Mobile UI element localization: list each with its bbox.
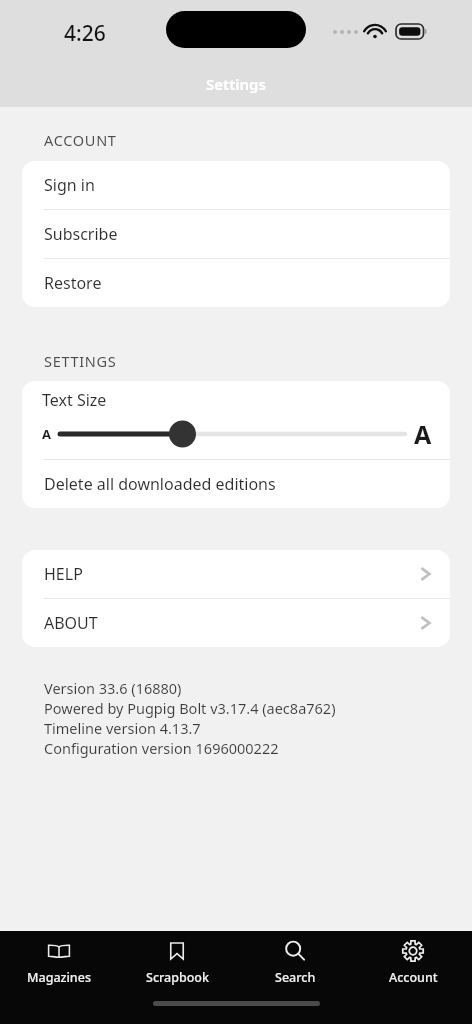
staticText: Magazines <box>27 969 91 986</box>
button[interactable]: Search <box>236 931 354 993</box>
staticText: ACCOUNT <box>44 130 117 150</box>
staticText: Configuration version 1696000222 <box>44 738 279 758</box>
staticText: Timeline version 4.13.7 <box>44 718 201 738</box>
staticText: Account <box>389 969 438 986</box>
staticText: Scrapbook <box>146 969 209 986</box>
staticText: HELP <box>44 563 83 585</box>
staticText: Subscribe <box>44 223 118 245</box>
staticText: ABOUT <box>44 612 98 634</box>
staticText: 4:26 <box>64 19 106 48</box>
staticText: Sign in <box>44 174 95 196</box>
staticText: Search <box>275 969 316 986</box>
button[interactable]: Text size slider <box>51 418 414 450</box>
button[interactable]: HELP <box>22 550 450 598</box>
button[interactable]: Restore <box>22 259 450 307</box>
staticText: Delete all downloaded editions <box>44 473 276 495</box>
staticText: A <box>42 425 51 443</box>
staticText: Text Size <box>42 389 107 411</box>
staticText: Version 33.6 (16880) <box>44 678 182 698</box>
button[interactable]: Magazines <box>0 931 118 993</box>
staticText: Restore <box>44 272 102 294</box>
staticText: SETTINGS <box>44 351 117 371</box>
button[interactable]: Delete all downloaded editions <box>22 460 450 508</box>
button[interactable]: Sign in <box>22 161 450 209</box>
staticText: Settings <box>0 74 472 94</box>
button[interactable]: ABOUT <box>22 599 450 647</box>
button[interactable]: Scrapbook <box>118 931 236 993</box>
staticText: Powered by Pugpig Bolt v3.17.4 (aec8a762… <box>44 698 336 718</box>
staticText: A <box>414 417 432 451</box>
button[interactable]: Subscribe <box>22 210 450 258</box>
button[interactable]: Account <box>354 931 472 993</box>
